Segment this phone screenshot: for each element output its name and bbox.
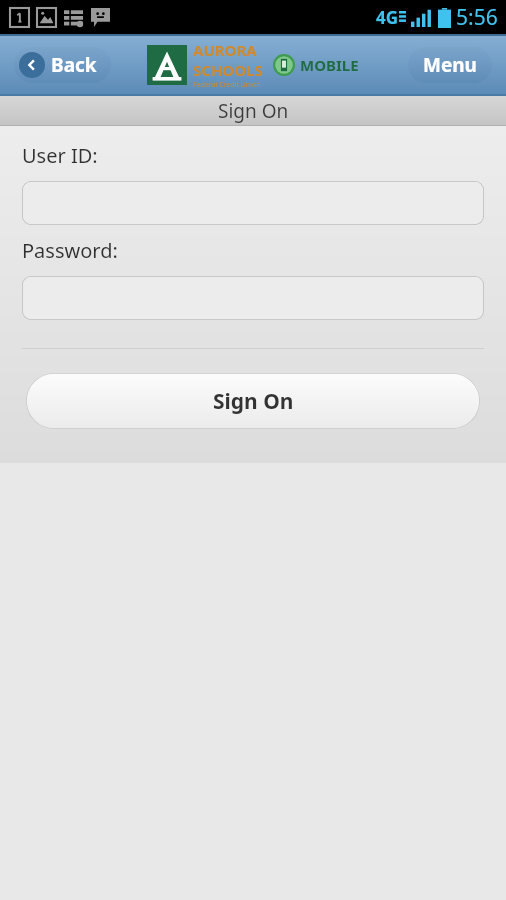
button[interactable]: User ID input <box>22 181 484 225</box>
staticText: Back <box>51 52 97 78</box>
button[interactable]: Back <box>14 47 111 83</box>
button[interactable]: Menu <box>408 47 492 83</box>
staticText: 5:56 <box>456 3 498 32</box>
staticText: Sign On <box>218 98 289 124</box>
staticText: Menu <box>423 52 477 78</box>
button[interactable]: Sign On <box>26 373 480 429</box>
staticText: AURORA <box>193 40 257 60</box>
staticText: Sign On <box>213 387 294 416</box>
staticText: 4G <box>376 6 399 29</box>
staticText: SCHOOLS <box>193 60 263 80</box>
staticText: MOBILE <box>300 55 359 75</box>
staticText: User ID: <box>22 142 98 169</box>
staticText: Password: <box>22 237 118 264</box>
button[interactable]: Password input <box>22 276 484 320</box>
staticText: Federal Credit Union <box>193 80 261 90</box>
